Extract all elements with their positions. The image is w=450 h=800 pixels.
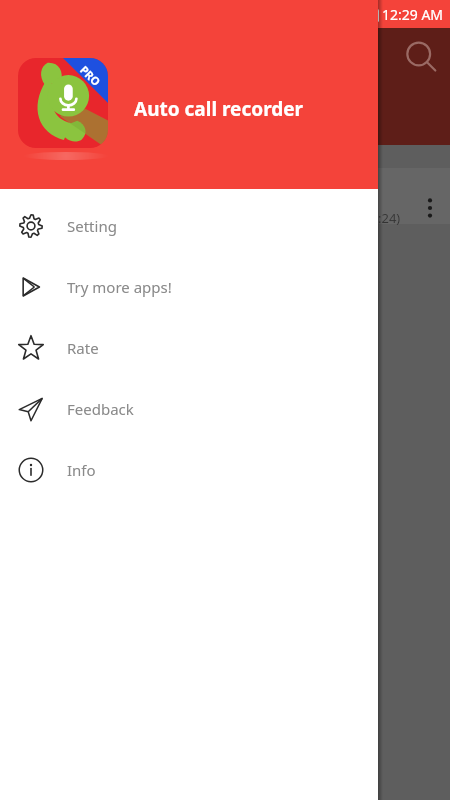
staticText: Info (67, 460, 96, 480)
staticText: Setting (67, 216, 117, 236)
staticText: Rate (67, 338, 99, 358)
staticText: PRO (77, 62, 104, 89)
staticText: :24) (378, 209, 401, 227)
button[interactable]: Try more apps! (0, 256, 378, 317)
button[interactable]: Search (402, 38, 440, 76)
button[interactable]: More options (415, 190, 445, 230)
staticText: Try more apps! (67, 277, 172, 297)
staticText: Auto call recorder (134, 96, 304, 122)
staticText: Feedback (67, 399, 134, 419)
staticText: 12:29 AM (382, 5, 444, 24)
button[interactable]: Info (0, 439, 378, 500)
button[interactable]: Rate (0, 317, 378, 378)
button[interactable]: Setting (0, 195, 378, 256)
button[interactable]: Feedback (0, 378, 378, 439)
